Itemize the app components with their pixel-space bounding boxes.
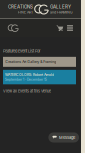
staticText: CREATIONS	[8, 4, 33, 10]
button[interactable]: Menu	[65, 19, 75, 37]
staticText: FINE ART	[18, 10, 33, 14]
staticText: and FRAMING	[50, 10, 73, 14]
staticText: Featured Event List For	[3, 48, 41, 53]
staticText: View all Events at this Venue	[3, 89, 51, 93]
staticText: Message	[59, 135, 75, 140]
staticText: GALLERY	[50, 4, 71, 10]
button[interactable]: Shopping cart	[55, 19, 65, 37]
button[interactable]: Creations Gallery home	[0, 19, 18, 37]
staticText: September 1 - December 15	[5, 77, 47, 81]
staticText: WATERCOLORS: Robert Arnold	[5, 73, 54, 77]
staticText: Creations Art Gallery & Framing	[5, 60, 56, 64]
button[interactable]: Message	[48, 132, 79, 142]
button[interactable]: Creations Art Gallery & Framing	[3, 57, 76, 67]
button[interactable]: WATERCOLORS: Robert Arnold	[3, 70, 76, 84]
button[interactable]: View all Events at this Venue	[3, 89, 51, 93]
